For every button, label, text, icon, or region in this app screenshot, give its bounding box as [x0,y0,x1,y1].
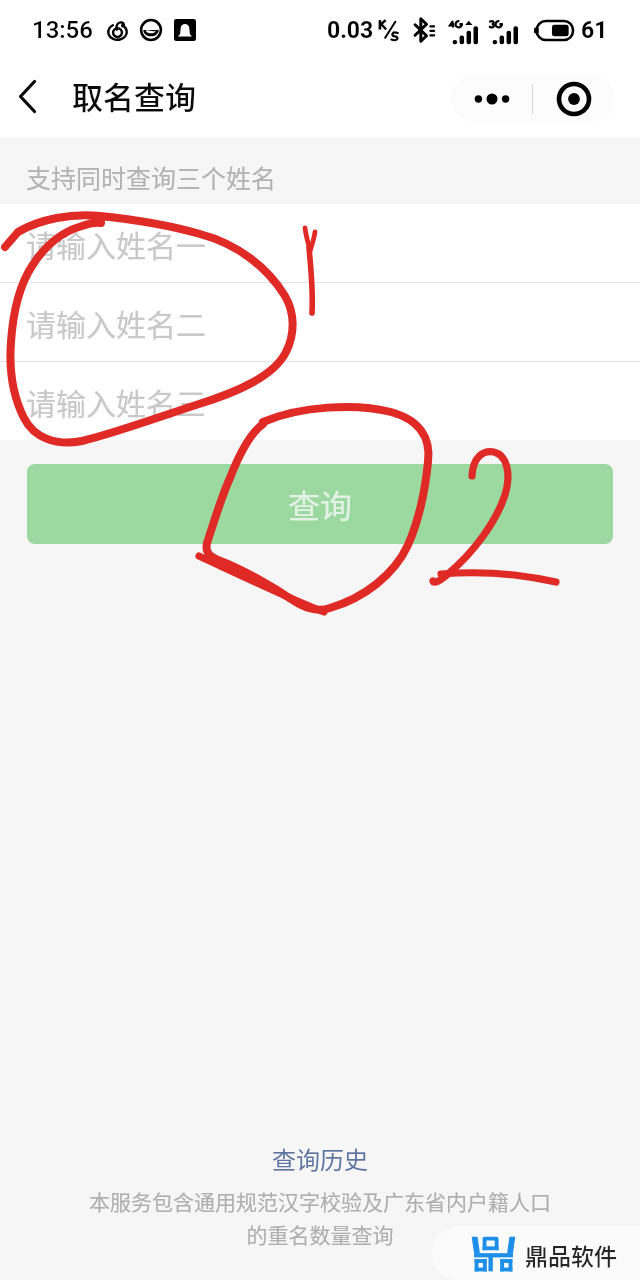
staticText: 支持同时查询三个姓名 [26,159,277,195]
staticText: 本服务包含通用规范汉字校验及广东省内户籍人口 的重名数量查询 [89,1186,551,1249]
staticText: 0.03 [327,17,374,44]
button[interactable]: Close mini program [533,75,615,122]
staticText: 请输入姓名一 [26,222,206,265]
button[interactable]: Back [0,60,54,137]
staticText: 请输入姓名二 [26,301,206,344]
staticText: 13:56 [32,16,93,44]
button[interactable]: 请输入姓名三 [0,362,640,440]
button[interactable]: 请输入姓名二 [0,283,640,361]
button[interactable]: More options [451,75,532,122]
button[interactable]: 请输入姓名一 [0,204,640,282]
staticText: 取名查询 [72,73,196,118]
button[interactable]: 查询 [27,464,613,544]
staticText: 61 [581,17,608,44]
button[interactable]: 查询历史 [262,1139,378,1178]
staticText: 鼎品软件 [525,1238,617,1271]
staticText: 请输入姓名三 [26,380,206,423]
staticText: 查询 [288,481,353,527]
